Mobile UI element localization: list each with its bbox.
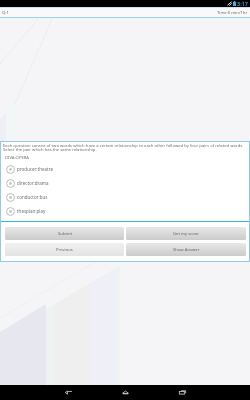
button[interactable]: director:drama [1, 176, 249, 190]
button[interactable]: thespian:play [1, 204, 249, 218]
button[interactable]: Show Answer [126, 243, 246, 256]
staticText: producer:theatre [17, 166, 53, 172]
button[interactable]: producer:theatre [1, 162, 249, 176]
staticText: director:drama [17, 180, 49, 186]
staticText: DIVA:OPERA [5, 155, 30, 161]
button[interactable]: Submit [5, 227, 124, 240]
staticText: conductor:bus [17, 194, 48, 200]
staticText: thespian:play [17, 208, 46, 214]
button[interactable]: Home [117, 385, 133, 400]
staticText: Previous [56, 247, 73, 253]
staticText: Submit [58, 231, 72, 237]
staticText: Each question consist of two words which… [3, 143, 247, 153]
staticText: 3:17 [237, 0, 248, 7]
button[interactable]: Recent apps [174, 385, 190, 400]
button[interactable]: conductor:bus [1, 190, 249, 204]
staticText: Show Answer [173, 247, 200, 253]
staticText: Q:1 [2, 10, 9, 16]
button[interactable]: Get my score [126, 227, 246, 240]
staticText: Time:0 min/1hr [217, 10, 248, 16]
button[interactable]: Previous [5, 243, 124, 256]
staticText: Get my score [173, 231, 199, 237]
button[interactable]: Back [60, 385, 76, 400]
